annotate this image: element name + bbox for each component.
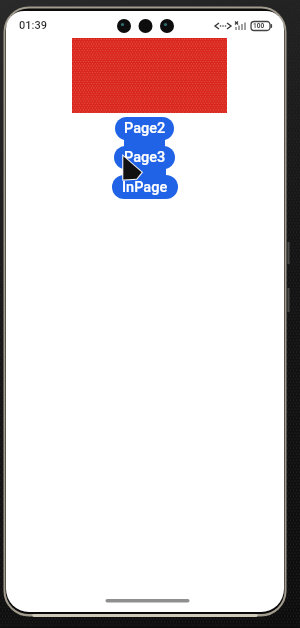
staticText: Page3 (124, 149, 166, 166)
button[interactable]: Page3 (114, 146, 175, 169)
staticText: 100 (253, 22, 265, 30)
button[interactable]: InPage (112, 175, 178, 199)
staticText: Page2 (124, 120, 166, 137)
button[interactable]: Page2 (115, 117, 174, 140)
staticText: InPage (122, 179, 168, 196)
staticText: 01:39 (19, 19, 47, 32)
